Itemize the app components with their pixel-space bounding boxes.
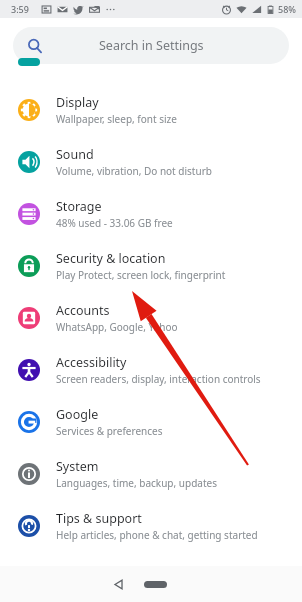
staticText: Security & location [56, 250, 166, 267]
staticText: Languages, time, backup, updates [56, 476, 217, 490]
button[interactable]: System [0, 448, 302, 500]
staticText: Google [56, 406, 99, 423]
button[interactable]: Back [104, 570, 132, 598]
button[interactable]: Storage [0, 188, 302, 240]
staticText: Accessibility [56, 354, 127, 371]
staticText: WhatsApp, Google, Yahoo [56, 320, 178, 334]
button[interactable]: Tips & support [0, 500, 302, 552]
staticText: Services & preferences [56, 424, 163, 438]
staticText: Help articles, phone & chat, getting sta… [56, 528, 258, 542]
staticText: 3:59 [11, 3, 29, 15]
staticText: Volume, vibration, Do not disturb [56, 164, 212, 178]
staticText: Search in Settings [99, 37, 204, 54]
staticText: Accounts [56, 302, 110, 319]
staticText: Screen readers, display, interaction con… [56, 372, 261, 386]
staticText: Tips & support [56, 510, 142, 527]
staticText: Wallpaper, sleep, font size [56, 112, 177, 126]
button[interactable]: Security & location [0, 240, 302, 292]
button[interactable]: Accessibility [0, 344, 302, 396]
staticText: Storage [56, 198, 102, 215]
staticText: Display [56, 94, 99, 111]
staticText: 48% used - 33.06 GB free [56, 216, 173, 230]
button[interactable]: Accounts [0, 292, 302, 344]
staticText: Sound [56, 146, 94, 163]
button[interactable]: Home [138, 574, 172, 594]
staticText: Play Protect, screen lock, fingerprint [56, 268, 226, 282]
button[interactable]: Google [0, 396, 302, 448]
staticText: System [56, 458, 99, 475]
button[interactable]: Sound [0, 136, 302, 188]
button[interactable]: Display [0, 80, 302, 136]
staticText: 58% [278, 3, 296, 15]
button[interactable]: Search in Settings [13, 27, 289, 64]
